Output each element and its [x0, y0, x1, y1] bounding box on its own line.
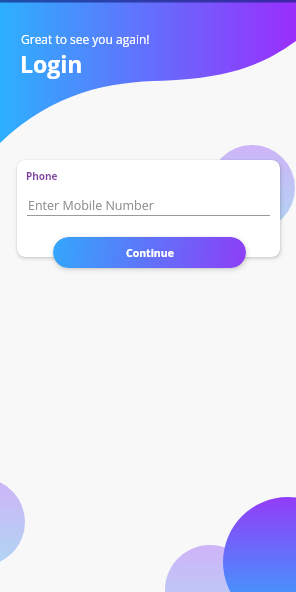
- staticText: Phone: [26, 169, 58, 183]
- staticText: Login: [20, 48, 83, 79]
- staticText: Great to see you again!: [21, 31, 150, 47]
- staticText: Continue: [126, 246, 174, 260]
- staticText: Enter Mobile Number: [28, 197, 154, 214]
- button[interactable]: Continue: [53, 237, 246, 268]
